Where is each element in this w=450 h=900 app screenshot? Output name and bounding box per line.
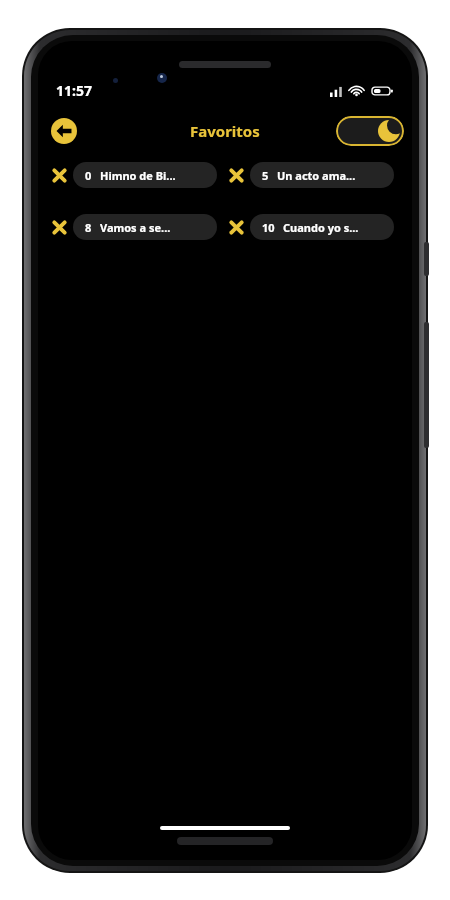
staticText: Favoritos: [190, 121, 260, 141]
staticText: 0: [85, 168, 92, 183]
staticText: Un acto ama...: [277, 168, 356, 183]
staticText: 11:57: [56, 81, 92, 100]
button[interactable]: Toggle night mode: [336, 116, 404, 146]
button[interactable]: Remove Un acto ama... from favorites: [225, 164, 247, 186]
button[interactable]: Remove Vamos a se... from favorites: [48, 216, 70, 238]
staticText: 10: [262, 220, 275, 235]
button[interactable]: Remove Cuando yo s... from favorites: [225, 216, 247, 238]
staticText: Cuando yo s...: [283, 220, 359, 235]
button[interactable]: 10: [250, 214, 394, 240]
staticText: 5: [262, 168, 269, 183]
button[interactable]: Back: [50, 117, 78, 145]
staticText: 8: [85, 220, 92, 235]
button[interactable]: 0: [73, 162, 217, 188]
button[interactable]: 5: [250, 162, 394, 188]
button[interactable]: 8: [73, 214, 217, 240]
button[interactable]: Remove Himno de Bi... from favorites: [48, 164, 70, 186]
staticText: Himno de Bi...: [100, 168, 176, 183]
staticText: Vamos a se...: [100, 220, 171, 235]
